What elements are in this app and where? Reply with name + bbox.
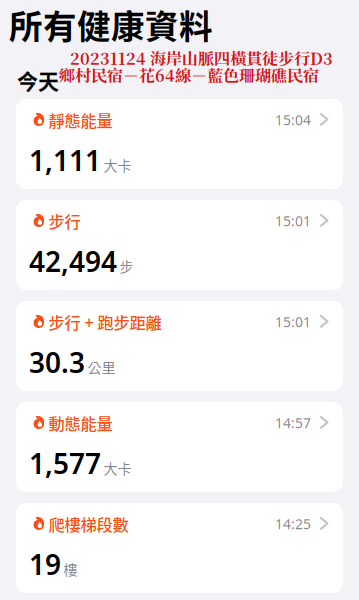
- staticText: 1,111: [29, 141, 101, 179]
- staticText: 今天: [17, 65, 59, 95]
- staticText: 所有健康資料: [9, 0, 213, 48]
- button[interactable]: 動態能量: [16, 402, 343, 492]
- staticText: 動態能量: [48, 411, 112, 435]
- staticText: 14:25: [275, 514, 311, 533]
- staticText: 公里: [87, 357, 115, 377]
- staticText: 靜態能量: [48, 108, 112, 132]
- staticText: 15:04: [275, 110, 311, 129]
- staticText: 15:01: [275, 211, 311, 230]
- staticText: 14:57: [275, 413, 311, 432]
- staticText: 爬樓梯段數: [48, 512, 128, 536]
- staticText: 42,494: [29, 242, 117, 280]
- staticText: 鄉村民宿－花64線－藍色珊瑚礁民宿: [59, 63, 319, 86]
- button[interactable]: 步行 + 跑步距離: [16, 301, 343, 391]
- button[interactable]: 爬樓梯段數: [16, 503, 343, 593]
- button[interactable]: 靜態能量: [16, 99, 343, 189]
- staticText: 15:01: [275, 312, 311, 331]
- staticText: 大卡: [103, 458, 131, 478]
- staticText: 步行 + 跑步距離: [48, 310, 161, 334]
- staticText: 步行: [48, 209, 80, 233]
- button[interactable]: 步行: [16, 200, 343, 290]
- staticText: 大卡: [103, 155, 131, 175]
- staticText: 19: [29, 545, 61, 583]
- staticText: 30.3: [29, 343, 85, 381]
- staticText: 樓: [63, 559, 77, 579]
- staticText: 步: [119, 256, 133, 276]
- staticText: 20231124 海岸山脈四橫貫徒步行D3: [70, 46, 333, 69]
- staticText: 1,577: [29, 444, 101, 482]
